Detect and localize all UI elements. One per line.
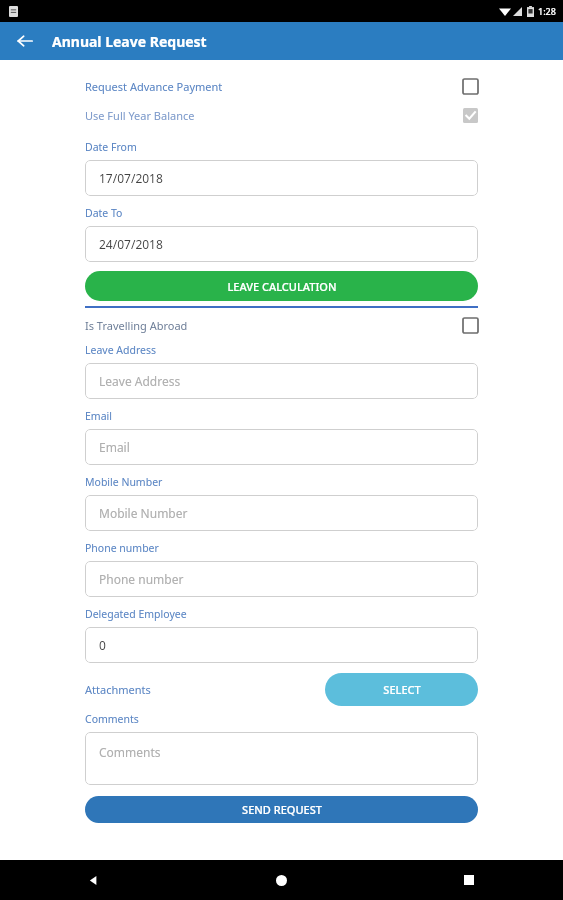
staticText: 1:28 (538, 5, 556, 17)
button[interactable]: SELECT (325, 673, 478, 706)
staticText: Comments (85, 712, 139, 726)
button[interactable]: 0 (85, 627, 478, 663)
button[interactable]: Comments (85, 732, 478, 785)
button[interactable]: Home (187, 860, 375, 900)
staticText: Mobile Number (85, 475, 163, 489)
staticText: Leave Address (99, 373, 181, 389)
staticText: Email (99, 439, 130, 455)
button[interactable]: Is Travelling Abroad (85, 311, 478, 339)
staticText: Email (85, 409, 112, 423)
staticText: Attachments (85, 682, 151, 697)
staticText: Comments (99, 744, 161, 760)
staticText: Use Full Year Balance (85, 108, 195, 123)
staticText: SELECT (383, 682, 421, 697)
button[interactable]: Request Advance Payment (85, 72, 478, 100)
staticText: Date From (85, 140, 137, 154)
button[interactable]: Phone number (85, 561, 478, 597)
staticText: Mobile Number (99, 505, 188, 521)
button[interactable]: Use Full Year Balance (85, 101, 478, 129)
button[interactable]: 17/07/2018 (85, 160, 478, 196)
button[interactable]: LEAVE CALCULATION (85, 271, 478, 301)
staticText: Phone number (99, 571, 184, 587)
staticText: Phone number (85, 541, 159, 555)
button[interactable]: Recent apps (375, 860, 563, 900)
button[interactable]: 24/07/2018 (85, 226, 478, 262)
staticText: 17/07/2018 (99, 170, 163, 186)
button[interactable]: Email (85, 429, 478, 465)
staticText: Is Travelling Abroad (85, 318, 188, 333)
staticText: SEND REQUEST (242, 802, 322, 817)
staticText: Request Advance Payment (85, 79, 223, 94)
staticText: Delegated Employee (85, 607, 187, 621)
staticText: Date To (85, 206, 123, 220)
button[interactable]: Mobile Number (85, 495, 478, 531)
staticText: Annual Leave Request (52, 32, 207, 51)
button[interactable]: Back (0, 860, 187, 900)
button[interactable]: Back (10, 26, 40, 56)
staticText: 24/07/2018 (99, 236, 163, 252)
staticText: Leave Address (85, 343, 157, 357)
button[interactable]: SEND REQUEST (85, 796, 478, 823)
staticText: 0 (99, 637, 106, 653)
staticText: LEAVE CALCULATION (227, 279, 337, 294)
button[interactable]: Leave Address (85, 363, 478, 399)
